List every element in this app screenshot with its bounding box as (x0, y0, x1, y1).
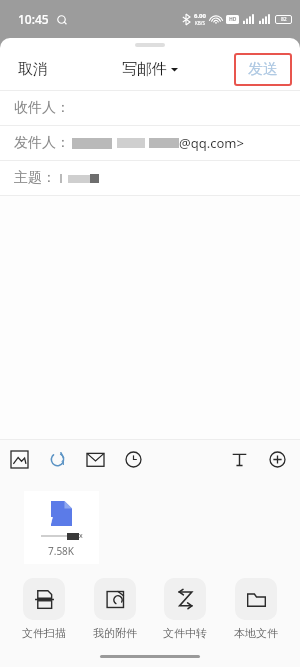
staticText: 82 (281, 16, 287, 23)
button[interactable]: Text format (220, 440, 258, 478)
staticText: 收件人： (14, 99, 70, 117)
button[interactable]: 写邮件 (112, 54, 188, 85)
staticText: 1 (61, 458, 66, 468)
button[interactable]: 发件人： (0, 126, 300, 160)
button[interactable]: 发送 (237, 56, 289, 83)
staticText: 取消 (18, 60, 48, 79)
staticText: KB/S (195, 20, 205, 26)
staticText: 发送 (248, 60, 278, 79)
button[interactable]: 收件人： (0, 91, 300, 125)
staticText: 本地文件 (234, 626, 278, 640)
staticText: W (42, 513, 53, 526)
staticText: 我的附件 (93, 626, 137, 640)
button[interactable]: Mail (76, 440, 114, 478)
button[interactable]: 主题： (0, 161, 300, 195)
button[interactable]: Insert image (0, 440, 38, 478)
staticText: 7.58K (48, 544, 75, 558)
button[interactable]: More (258, 440, 296, 478)
staticText: 文件中转 (163, 626, 207, 640)
button[interactable]: 本地文件 (230, 578, 282, 640)
staticText: 10:45 (18, 11, 49, 27)
button[interactable]: Attachment 7.58K (24, 491, 99, 564)
button[interactable]: 我的附件 (89, 578, 141, 640)
button[interactable]: 文件扫描 (18, 578, 70, 640)
button[interactable]: 取消 (0, 52, 66, 87)
staticText: x (79, 531, 83, 541)
staticText: HD (229, 16, 237, 23)
staticText: 6.00 (194, 12, 206, 20)
staticText: 文件扫描 (22, 626, 66, 640)
button[interactable]: 文件中转 (159, 578, 211, 640)
staticText: 发件人： (14, 134, 70, 152)
button[interactable]: Schedule (114, 440, 152, 478)
staticText: 写邮件 (122, 60, 167, 79)
button[interactable]: Attachment (38, 440, 76, 478)
staticText: @qq.com> (179, 134, 244, 152)
staticText: 主题： (14, 169, 56, 187)
